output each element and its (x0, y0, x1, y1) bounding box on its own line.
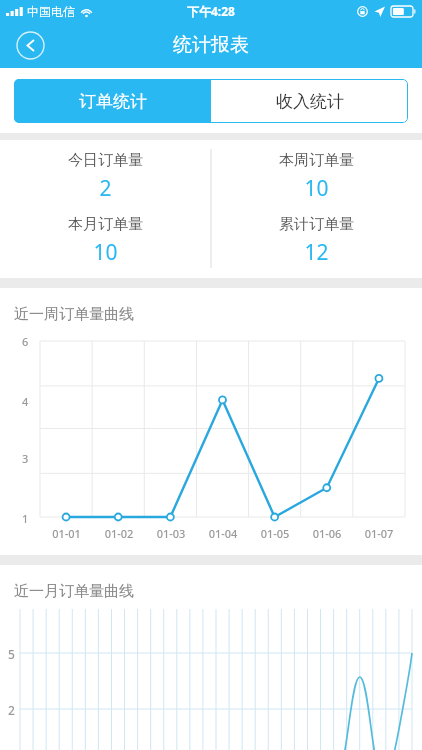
staticText: 10 (304, 174, 329, 203)
staticText: 3 (22, 451, 29, 466)
button[interactable]: 收入统计 (211, 79, 408, 123)
button[interactable]: 累计订单量 (279, 215, 354, 267)
staticText: 今日订单量 (68, 151, 143, 170)
staticText: 01-02 (93, 526, 145, 541)
staticText: 12 (304, 238, 329, 267)
button[interactable]: 本周订单量 (279, 151, 354, 203)
button[interactable]: 本月订单量 (68, 215, 143, 267)
staticText: 01-03 (145, 526, 197, 541)
button[interactable]: 今日订单量 (68, 151, 143, 203)
button[interactable]: Back (13, 28, 47, 62)
staticText: 2 (99, 174, 112, 203)
staticText: 下午4:28 (187, 3, 235, 19)
staticText: 中国电信 (27, 4, 75, 19)
staticText: 01-06 (301, 526, 353, 541)
staticText: 01-07 (353, 526, 405, 541)
staticText: 1 (22, 511, 29, 526)
staticText: 本月订单量 (68, 215, 143, 234)
staticText: 0 (22, 570, 29, 585)
staticText: 统计报表 (173, 33, 249, 57)
staticText: 近一周订单量曲线 (14, 305, 134, 324)
staticText: 01-04 (197, 526, 249, 541)
staticText: 收入统计 (276, 91, 344, 112)
staticText: 2 (8, 702, 15, 718)
staticText: 6 (22, 334, 29, 349)
staticText: 01-05 (249, 526, 301, 541)
staticText: 本周订单量 (279, 151, 354, 170)
staticText: 10 (93, 238, 118, 267)
staticText: 订单统计 (79, 91, 147, 112)
staticText: 01-01 (40, 526, 93, 541)
staticText: 4 (22, 394, 29, 409)
staticText: 5 (8, 646, 15, 662)
staticText: 近一月订单量曲线 (14, 582, 134, 601)
button[interactable]: 订单统计 (14, 79, 211, 123)
staticText: 累计订单量 (279, 215, 354, 234)
